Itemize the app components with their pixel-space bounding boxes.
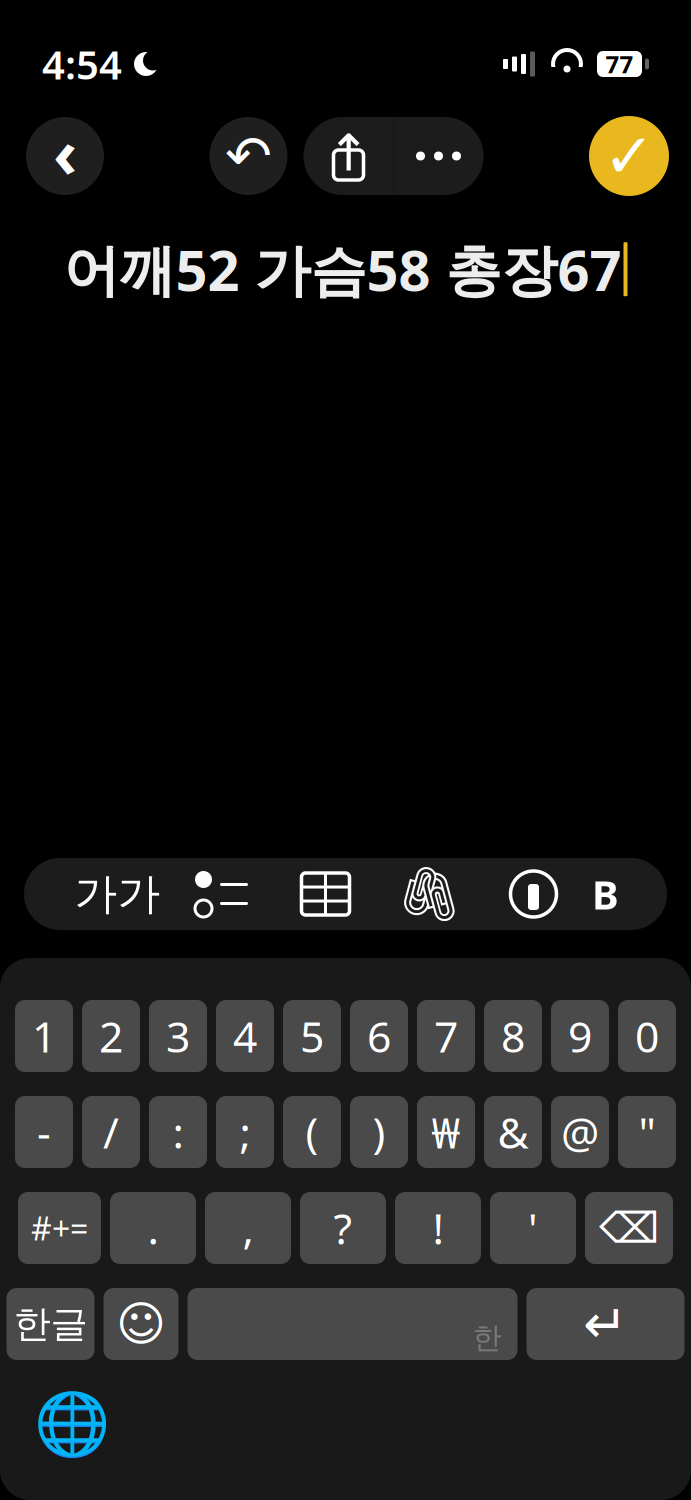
- button[interactable]: Text format: [65, 858, 169, 930]
- button[interactable]: Share: [303, 117, 393, 195]
- staticText: ⌫: [599, 1204, 659, 1252]
- staticText: 🖇: [395, 863, 463, 924]
- button[interactable]: ,: [205, 1192, 291, 1264]
- staticText: 4:54: [42, 37, 122, 90]
- button[interactable]: -: [15, 1096, 73, 1168]
- staticText: ☺: [116, 1297, 166, 1351]
- button[interactable]: &: [484, 1096, 542, 1168]
- button[interactable]: .: [110, 1192, 196, 1264]
- button[interactable]: @: [551, 1096, 609, 1168]
- button[interactable]: Table: [273, 858, 377, 930]
- staticText: @: [561, 1104, 599, 1160]
- staticText: /: [103, 1104, 119, 1160]
- staticText: ?: [333, 1200, 352, 1256]
- button[interactable]: Markup: [481, 858, 585, 930]
- staticText: 가가: [74, 868, 160, 920]
- staticText: ‹: [53, 108, 77, 196]
- button[interactable]: 8: [484, 1000, 542, 1072]
- staticText: ✓: [603, 121, 654, 191]
- button[interactable]: ': [490, 1192, 576, 1264]
- button[interactable]: More options: [393, 117, 483, 195]
- staticText: ↶: [225, 124, 272, 188]
- button[interactable]: 5: [283, 1000, 341, 1072]
- button[interactable]: #+=: [18, 1192, 101, 1264]
- button[interactable]: Attach file: [377, 858, 481, 930]
- staticText: (: [305, 1104, 318, 1160]
- staticText: ": [638, 1104, 655, 1160]
- button[interactable]: 0: [618, 1000, 676, 1072]
- button[interactable]: !: [395, 1192, 481, 1264]
- staticText: 4: [233, 1008, 257, 1064]
- button[interactable]: Emoji: [103, 1288, 178, 1360]
- staticText: 7: [434, 1008, 458, 1064]
- staticText: 1: [32, 1008, 56, 1064]
- button[interactable]: 4: [216, 1000, 274, 1072]
- button[interactable]: Checklist: [169, 858, 273, 930]
- button[interactable]: 9: [551, 1000, 609, 1072]
- button[interactable]: Delete: [585, 1192, 673, 1264]
- staticText: .: [147, 1200, 158, 1256]
- button[interactable]: :: [149, 1096, 207, 1168]
- staticText: 한: [472, 1320, 501, 1356]
- staticText: 3: [166, 1008, 190, 1064]
- staticText: &: [497, 1104, 528, 1160]
- button[interactable]: ": [618, 1096, 676, 1168]
- button[interactable]: 2: [82, 1000, 140, 1072]
- staticText: B: [592, 867, 619, 920]
- button[interactable]: (: [283, 1096, 341, 1168]
- staticText: 0: [635, 1008, 659, 1064]
- button[interactable]: 3: [149, 1000, 207, 1072]
- staticText: 어깨52 가슴58 총장67: [63, 232, 621, 306]
- staticText: 2: [99, 1008, 123, 1064]
- button[interactable]: Bold: [585, 858, 625, 930]
- staticText: 8: [501, 1008, 525, 1064]
- staticText: ): [372, 1104, 385, 1160]
- staticText: !: [432, 1200, 443, 1256]
- staticText: -: [37, 1104, 51, 1160]
- staticText: 9: [568, 1008, 592, 1064]
- button[interactable]: /: [82, 1096, 140, 1168]
- staticText: ': [528, 1200, 538, 1256]
- button[interactable]: Return: [526, 1288, 684, 1360]
- staticText: :: [172, 1104, 183, 1160]
- button[interactable]: Back: [26, 108, 104, 204]
- button[interactable]: Undo: [209, 117, 287, 195]
- button[interactable]: ₩: [417, 1096, 475, 1168]
- staticText: 한글: [13, 1301, 87, 1347]
- button[interactable]: Done: [589, 116, 669, 196]
- staticText: ↵: [583, 1294, 628, 1354]
- button[interactable]: ): [350, 1096, 408, 1168]
- staticText: 5: [300, 1008, 324, 1064]
- staticText: ;: [239, 1104, 250, 1160]
- staticText: 77: [605, 48, 633, 80]
- button[interactable]: ;: [216, 1096, 274, 1168]
- button[interactable]: ?: [300, 1192, 386, 1264]
- button[interactable]: 6: [350, 1000, 408, 1072]
- button[interactable]: 7: [417, 1000, 475, 1072]
- button[interactable]: 한글: [6, 1288, 94, 1360]
- staticText: 6: [367, 1008, 391, 1064]
- button[interactable]: 1: [15, 1000, 73, 1072]
- staticText: 🌐: [34, 1389, 110, 1459]
- staticText: #+=: [31, 1207, 88, 1249]
- staticText: ↑: [327, 124, 369, 182]
- button[interactable]: Space: [187, 1288, 517, 1360]
- staticText: ,: [242, 1200, 253, 1256]
- button[interactable]: Switch keyboard: [32, 1384, 112, 1464]
- staticText: ₩: [431, 1104, 460, 1160]
